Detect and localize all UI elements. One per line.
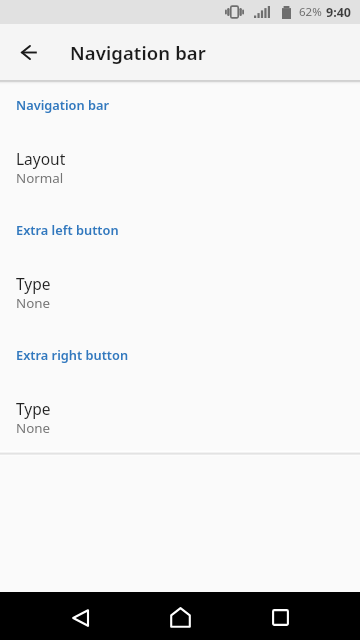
button[interactable]: Navigation bar: [0, 85, 360, 131]
button[interactable]: Extra right button: [0, 330, 360, 381]
staticText: 9:40: [326, 4, 351, 21]
button[interactable]: Back: [56, 594, 104, 640]
button[interactable]: Recent apps: [256, 593, 304, 640]
button[interactable]: Extra left button: [0, 205, 360, 256]
button[interactable]: Layout: [0, 131, 360, 205]
staticText: Navigation bar: [70, 40, 206, 65]
staticText: Type: [16, 398, 51, 419]
staticText: 62%: [299, 4, 322, 20]
staticText: Extra left button: [16, 221, 119, 238]
button[interactable]: Type: [0, 381, 360, 450]
button[interactable]: Home: [156, 593, 204, 640]
staticText: Navigation bar: [16, 96, 110, 113]
staticText: None: [16, 419, 51, 437]
staticText: Normal: [16, 169, 64, 187]
button[interactable]: Back: [8, 32, 49, 73]
staticText: Type: [16, 273, 51, 294]
button[interactable]: Type: [0, 256, 360, 330]
staticText: Extra right button: [16, 346, 129, 363]
staticText: None: [16, 294, 51, 312]
staticText: Layout: [16, 148, 66, 169]
